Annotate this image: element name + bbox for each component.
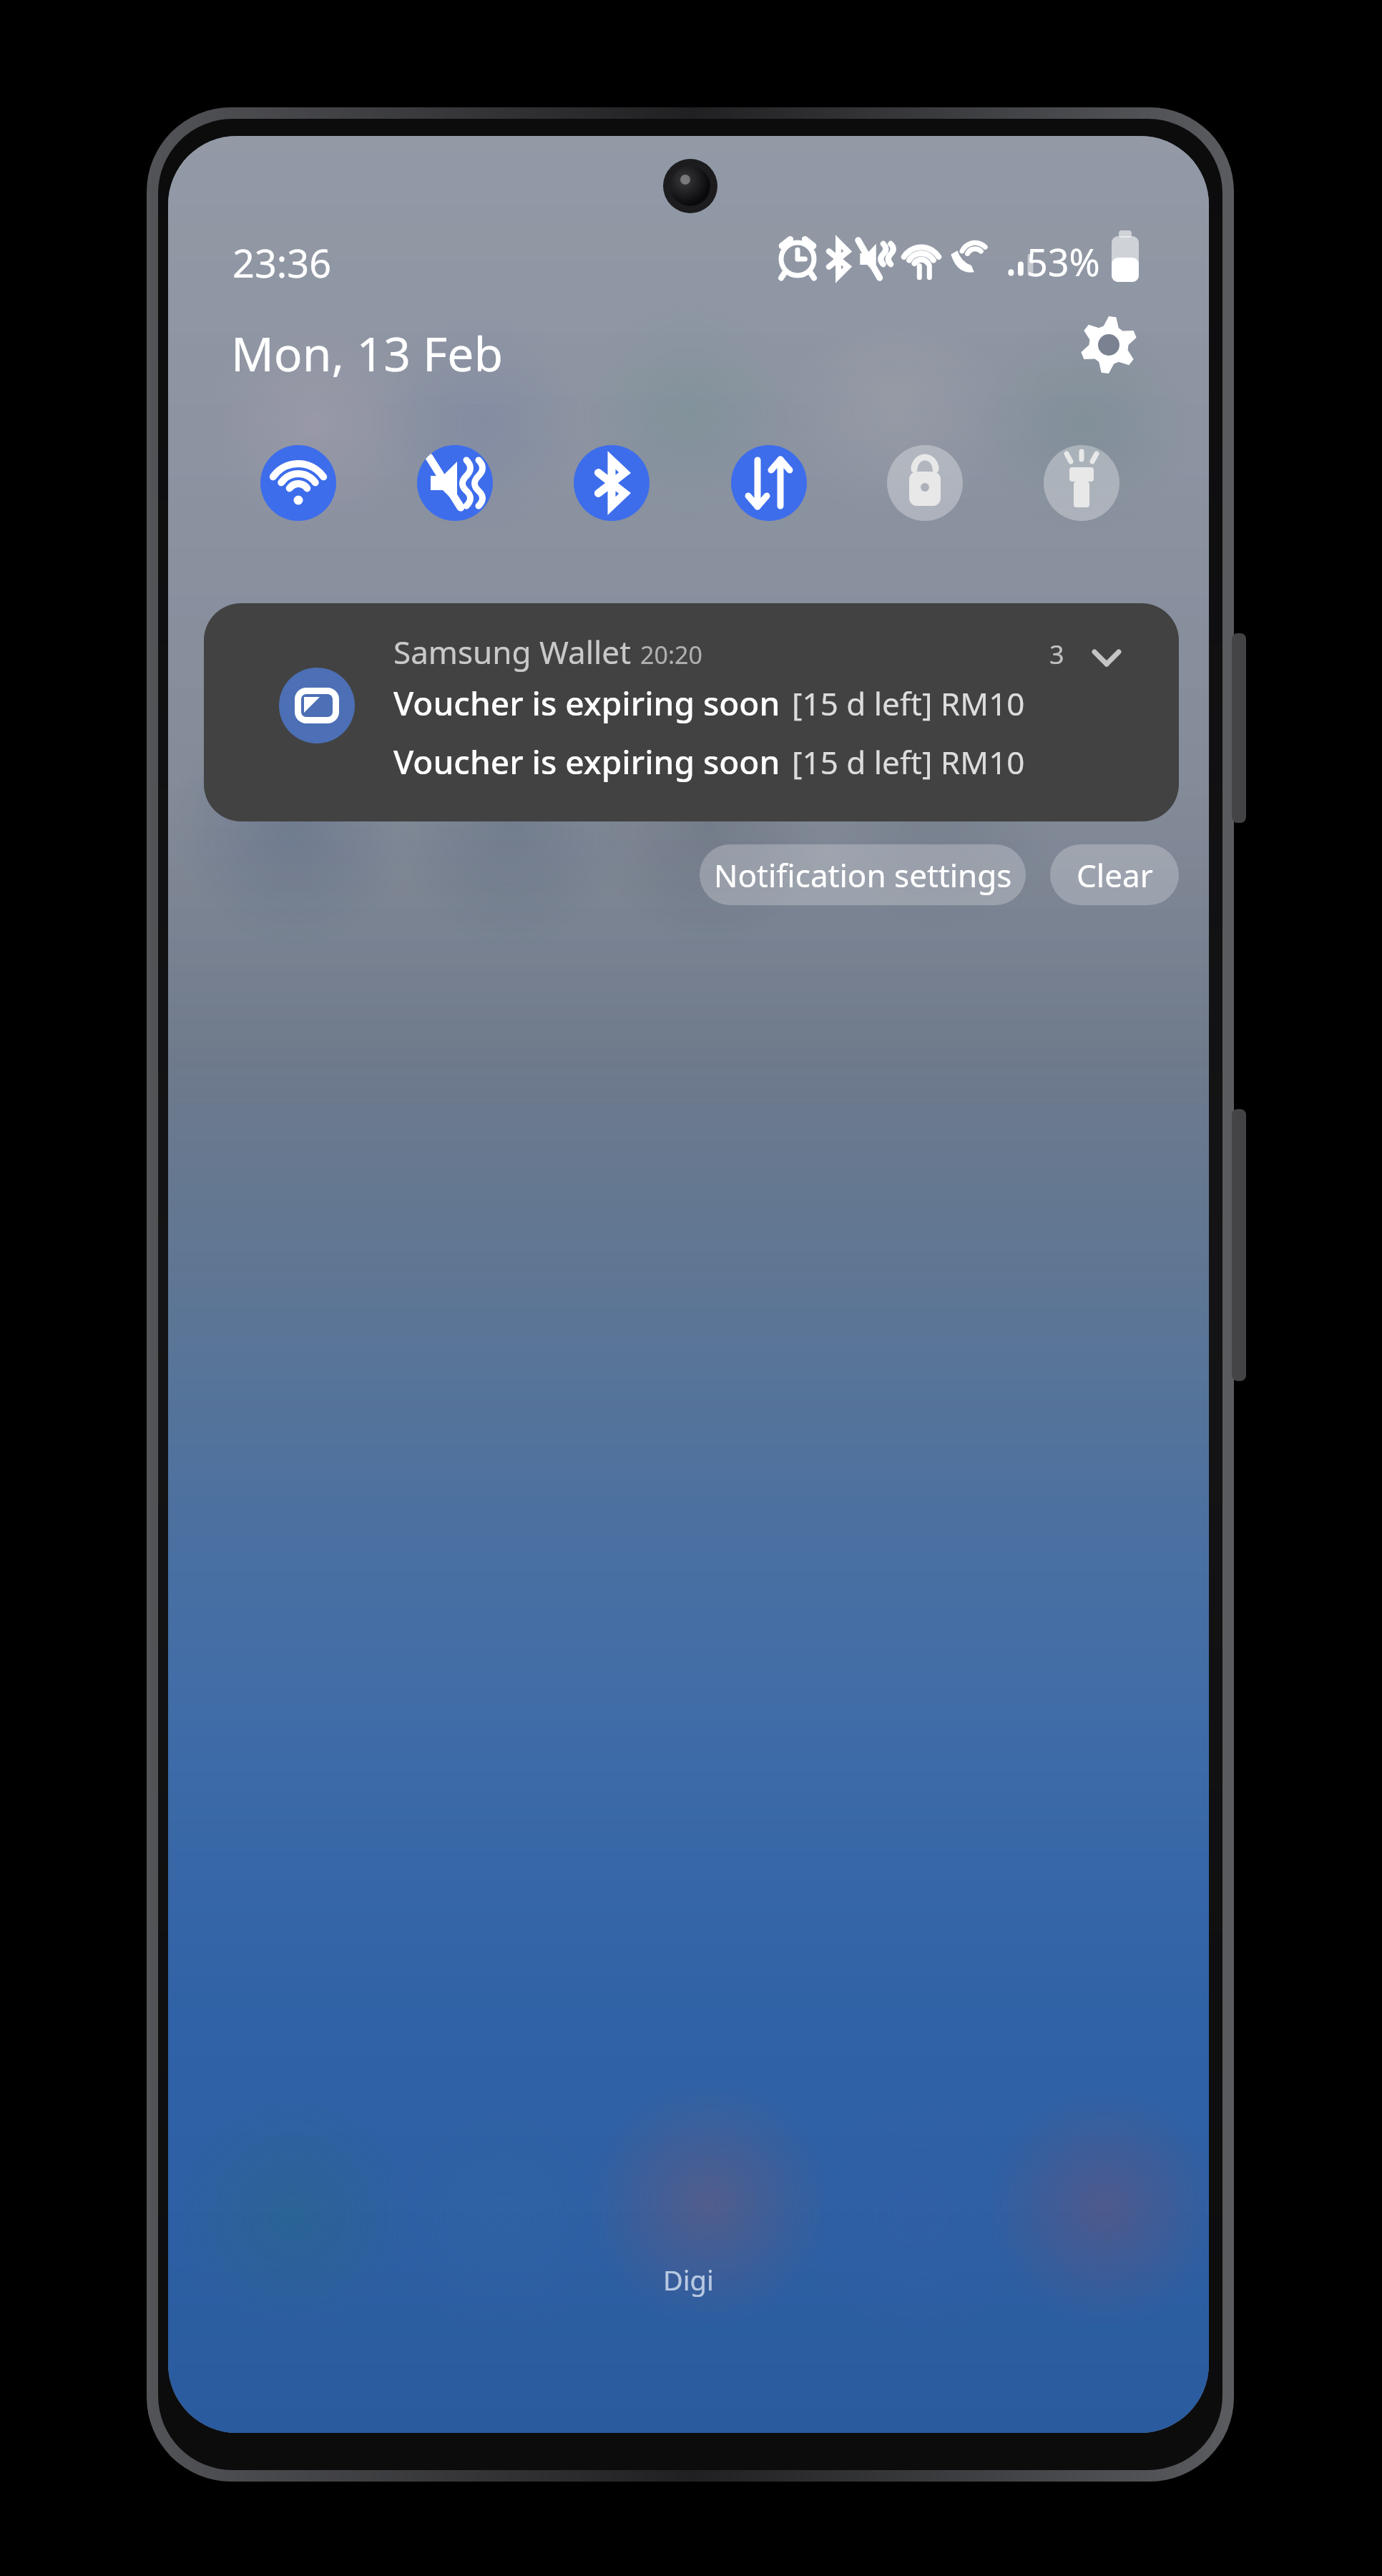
button[interactable]: Settings bbox=[1066, 302, 1152, 388]
button[interactable]: Flashlight bbox=[1044, 445, 1119, 521]
staticText: 23:36 bbox=[232, 236, 332, 289]
button[interactable]: Clear bbox=[1050, 844, 1179, 905]
staticText: Samsung Wallet bbox=[393, 630, 632, 673]
staticText: 20:20 bbox=[640, 638, 702, 671]
button[interactable]: Wi-Fi bbox=[260, 445, 336, 521]
button[interactable]: Screen lock bbox=[887, 445, 963, 521]
staticText: Digi bbox=[663, 2261, 714, 2298]
staticText: Voucher is expiring soon bbox=[393, 739, 780, 784]
button[interactable]: Mobile data bbox=[731, 445, 807, 521]
button[interactable]: Sound mode bbox=[417, 445, 493, 521]
button[interactable]: Expand bbox=[1090, 640, 1123, 673]
staticText: [15 d left] RM10 Voucher Expiry da… bbox=[792, 682, 1145, 725]
staticText: 3 bbox=[1049, 637, 1064, 672]
button[interactable]: Samsung Wallet bbox=[204, 603, 1179, 821]
staticText: Voucher is expiring soon bbox=[393, 680, 780, 726]
staticText: Notification settings bbox=[714, 854, 1012, 897]
staticText: [15 d left] RM10 Voucher Expiry da… bbox=[792, 741, 1145, 784]
staticText: 53% bbox=[1026, 236, 1100, 287]
staticText: Mon, 13 Feb bbox=[231, 321, 504, 385]
staticText: Clear bbox=[1077, 854, 1153, 897]
button[interactable]: Bluetooth bbox=[574, 445, 650, 521]
button[interactable]: Notification settings bbox=[700, 844, 1026, 905]
